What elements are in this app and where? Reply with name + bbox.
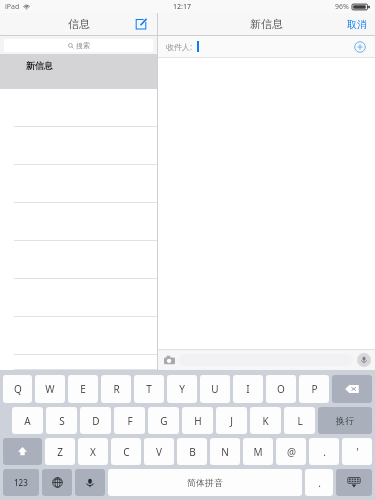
button[interactable]: B [177,438,207,465]
button[interactable]: N [210,438,240,465]
staticText: G [160,414,168,428]
button[interactable]: Hide keyboard [336,469,372,496]
staticText: @ [287,445,296,459]
button[interactable]: D [80,407,111,434]
button[interactable]: Change keyboard [42,469,72,496]
staticText: N [221,445,229,459]
button[interactable]: K [250,407,281,434]
button[interactable]: C [111,438,141,465]
button[interactable]: I [233,375,263,403]
staticText: Z [57,445,63,459]
staticText: I [246,382,250,396]
button[interactable]: P [299,375,329,403]
staticText: R [113,382,120,396]
button[interactable]: Shift [3,438,42,465]
button[interactable] [0,165,157,203]
button[interactable]: O [266,375,296,403]
staticText: iPad [5,2,20,12]
button[interactable]: X [78,438,108,465]
staticText: 12:17 [173,2,191,12]
button[interactable] [0,241,157,279]
button[interactable]: Compose new message [133,16,149,32]
staticText: 换行 [336,415,354,426]
staticText: F [127,414,133,428]
staticText: T [146,382,152,396]
button[interactable]: T [134,375,164,403]
button[interactable]: 收件人: [158,36,375,57]
button[interactable]: R [101,375,131,403]
button[interactable]: V [144,438,174,465]
button[interactable] [0,203,157,241]
staticText: ' [356,445,359,459]
button[interactable]: W [35,375,65,403]
staticText: H [194,414,202,428]
staticText: X [90,445,96,459]
staticText: . [318,476,321,490]
staticText: 123 [14,477,28,488]
staticText: V [156,445,162,459]
staticText: Y [179,382,185,396]
staticText: 简体拼音 [187,477,223,488]
button[interactable]: 新信息 [0,54,157,89]
staticText: D [92,414,100,428]
staticText: A [24,414,31,428]
button[interactable]: 换行 [318,407,372,434]
button[interactable]: . [305,469,333,496]
staticText: P [311,382,318,396]
staticText: C [123,445,130,459]
button[interactable]: Dictate message [357,353,371,367]
staticText: S [59,414,65,428]
button[interactable]: A [12,407,43,434]
button[interactable]: Take photo [162,353,176,367]
button[interactable]: 123 [3,469,39,496]
staticText: 96% [335,2,349,12]
button[interactable]: 搜索 [4,39,153,52]
staticText: M [253,445,263,459]
button[interactable]: Z [45,438,75,465]
staticText: J [230,414,233,428]
staticText: 信息 [68,17,90,31]
button[interactable]: E [68,375,98,403]
button[interactable]: ' [342,438,372,465]
button[interactable]: Dictate [75,469,105,496]
button[interactable]: J [216,407,247,434]
button[interactable]: 取消 [347,13,367,35]
staticText: 收件人: [166,41,193,52]
button[interactable]: U [200,375,230,403]
button[interactable]: Add contact [353,40,367,54]
staticText: U [211,382,219,396]
staticText: 新信息 [250,17,283,31]
button[interactable]: G [148,407,179,434]
button[interactable]: 简体拼音 [108,469,302,496]
staticText: 搜索 [76,41,90,50]
button[interactable]: @ [276,438,306,465]
staticText: 新信息 [26,60,53,71]
staticText: W [45,382,55,396]
button[interactable]: Backspace [332,375,372,403]
button[interactable] [0,89,157,127]
button[interactable]: L [284,407,315,434]
button[interactable] [0,317,157,355]
staticText: K [262,414,269,428]
staticText: 取消 [347,18,367,31]
button[interactable]: . [309,438,339,465]
button[interactable]: Y [167,375,197,403]
staticText: . [323,445,326,459]
button[interactable]: M [243,438,273,465]
staticText: O [277,382,285,396]
staticText: Q [14,382,22,396]
button[interactable] [0,355,157,370]
button[interactable] [0,279,157,317]
staticText: L [297,414,303,428]
button[interactable]: Q [3,375,32,403]
staticText: B [189,445,196,459]
button[interactable]: F [114,407,145,434]
button[interactable]: H [182,407,213,434]
staticText: E [80,382,86,396]
button[interactable]: S [46,407,77,434]
button[interactable] [0,127,157,165]
